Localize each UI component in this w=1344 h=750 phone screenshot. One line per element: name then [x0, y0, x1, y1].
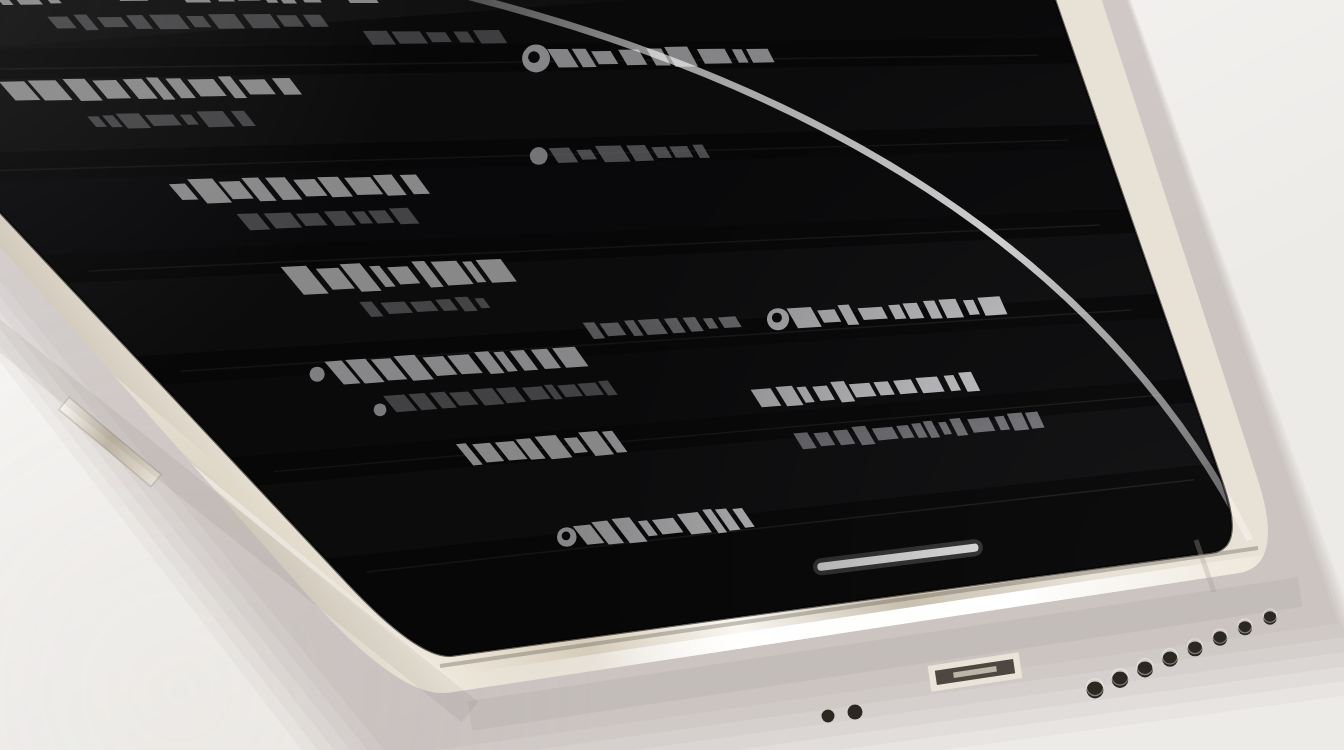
button[interactable]: Phone showing dark message list	[0, 0, 1344, 750]
